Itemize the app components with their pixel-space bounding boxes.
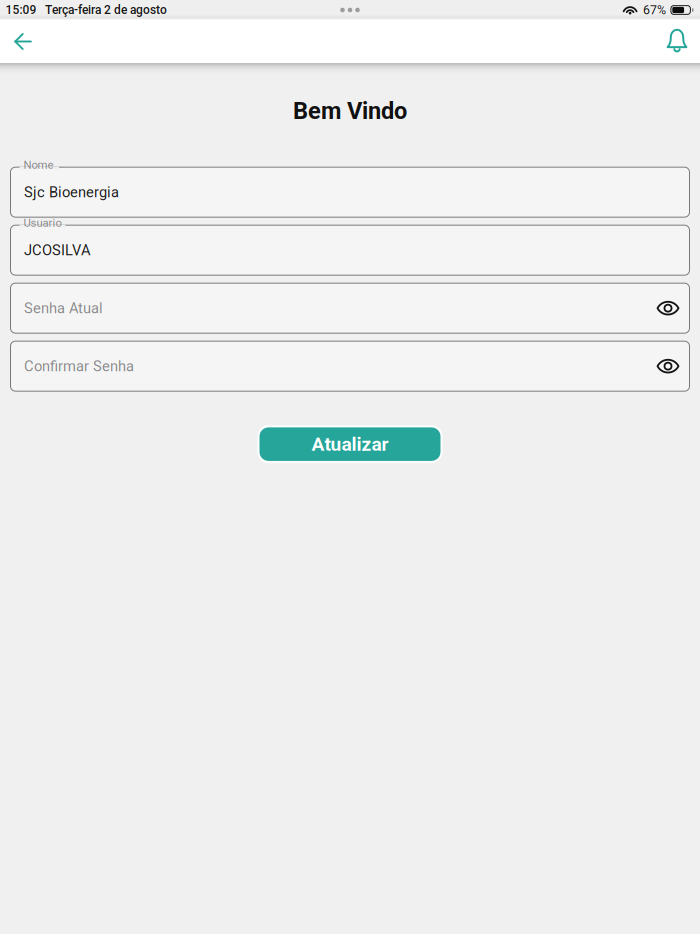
staticText: Terça-feira 2 de agosto: [45, 3, 167, 17]
staticText: Nome: [23, 158, 53, 171]
staticText: 15:09: [5, 3, 36, 17]
staticText: Confirmar Senha: [24, 358, 134, 375]
button[interactable]: Voltar: [1, 20, 45, 63]
staticText: JCOSILVA: [24, 242, 91, 259]
button[interactable]: Notificações: [655, 20, 699, 63]
button[interactable]: Mostrar Confirmar Senha: [647, 341, 689, 392]
button[interactable]: Atualizar: [257, 425, 442, 463]
staticText: Senha Atual: [24, 300, 103, 317]
staticText: Usuario: [23, 216, 61, 229]
button[interactable]: Mostrar Senha Atual: [647, 283, 689, 334]
staticText: Bem Vindo: [293, 97, 407, 125]
staticText: 67%: [643, 3, 666, 17]
staticText: Atualizar: [311, 433, 388, 455]
staticText: Sjc Bioenergia: [24, 184, 119, 201]
